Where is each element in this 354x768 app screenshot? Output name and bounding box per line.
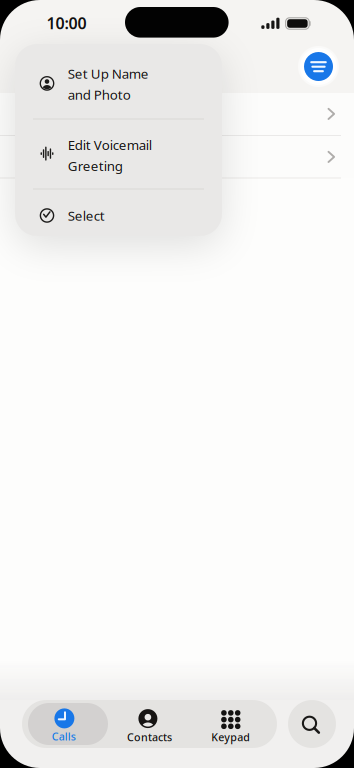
button[interactable]: Contacts <box>108 700 188 748</box>
button[interactable]: Set Up Name <box>15 44 222 119</box>
staticText: Keypad <box>211 730 250 744</box>
staticText: Set Up Name <box>68 65 149 82</box>
button[interactable]: Filter <box>298 46 339 87</box>
staticText: Select <box>68 207 105 224</box>
button[interactable]: Keypad <box>190 700 270 748</box>
staticText: Greeting <box>68 157 123 175</box>
button[interactable]: Calls <box>28 700 108 748</box>
button[interactable]: Recent call <box>0 135 354 178</box>
staticText: Edit Voicemail <box>68 136 152 154</box>
staticText: 10:00 <box>46 12 86 34</box>
staticText: and Photo <box>68 86 131 103</box>
staticText: Calls <box>52 729 76 743</box>
button[interactable]: Edit Voicemail <box>15 119 222 189</box>
staticText: Contacts <box>127 730 172 744</box>
button[interactable]: Search <box>288 700 336 748</box>
button[interactable]: Recent call <box>0 93 354 135</box>
button[interactable]: Select <box>15 189 222 236</box>
